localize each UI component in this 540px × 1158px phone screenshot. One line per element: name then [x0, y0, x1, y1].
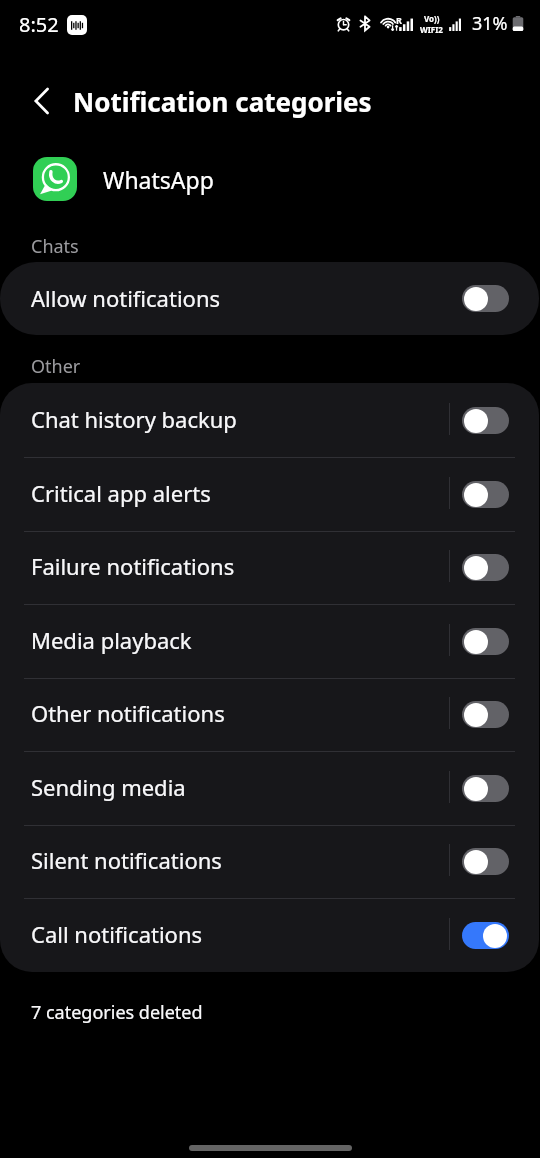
button[interactable]: Other notifications [0, 677, 539, 751]
staticText: Vo)) [424, 13, 440, 24]
staticText: Other [31, 354, 81, 379]
staticText: Chat history backup [31, 404, 237, 434]
button[interactable]: Failure notifications [0, 530, 539, 604]
button[interactable]: Critical app alerts [0, 457, 539, 531]
staticText: Call notifications [31, 919, 203, 949]
staticText: Critical app alerts [31, 478, 211, 508]
staticText: 7 categories deleted [31, 1000, 203, 1025]
button[interactable]: Silent notifications [0, 824, 539, 898]
staticText: Failure notifications [31, 551, 235, 581]
staticText: Allow notifications [31, 283, 221, 313]
button[interactable]: Call notifications [0, 898, 539, 972]
button[interactable]: Turn on Allow notifications [462, 285, 509, 312]
staticText: Other notifications [31, 698, 225, 728]
button[interactable]: Turn on Media playback [462, 628, 509, 655]
button[interactable]: Allow notifications [0, 262, 539, 335]
staticText: 31% [472, 11, 508, 36]
button[interactable]: Turn on Other notifications [462, 701, 509, 728]
staticText: 8:52 [19, 11, 59, 38]
button[interactable]: Sending media [0, 751, 539, 825]
staticText: R [396, 14, 402, 26]
button[interactable]: WhatsApp [0, 153, 540, 205]
staticText: WIFI2 [420, 24, 443, 35]
staticText: Silent notifications [31, 845, 222, 875]
staticText: Notification categories [73, 84, 372, 119]
staticText: WhatsApp [103, 164, 214, 195]
staticText: Chats [31, 234, 79, 259]
button[interactable]: Media playback [0, 604, 539, 678]
button[interactable]: Chat history backup [0, 383, 539, 457]
button[interactable]: Back [22, 81, 62, 121]
button[interactable]: Turn on Critical app alerts [462, 481, 509, 508]
staticText: Media playback [31, 625, 192, 655]
button[interactable]: Turn on Silent notifications [462, 848, 509, 875]
button[interactable]: Turn off Call notifications [462, 922, 509, 949]
button[interactable]: Turn on Chat history backup [462, 407, 509, 434]
staticText: Sending media [31, 772, 186, 802]
button[interactable]: Turn on Sending media [462, 775, 509, 802]
button[interactable]: Turn on Failure notifications [462, 554, 509, 581]
